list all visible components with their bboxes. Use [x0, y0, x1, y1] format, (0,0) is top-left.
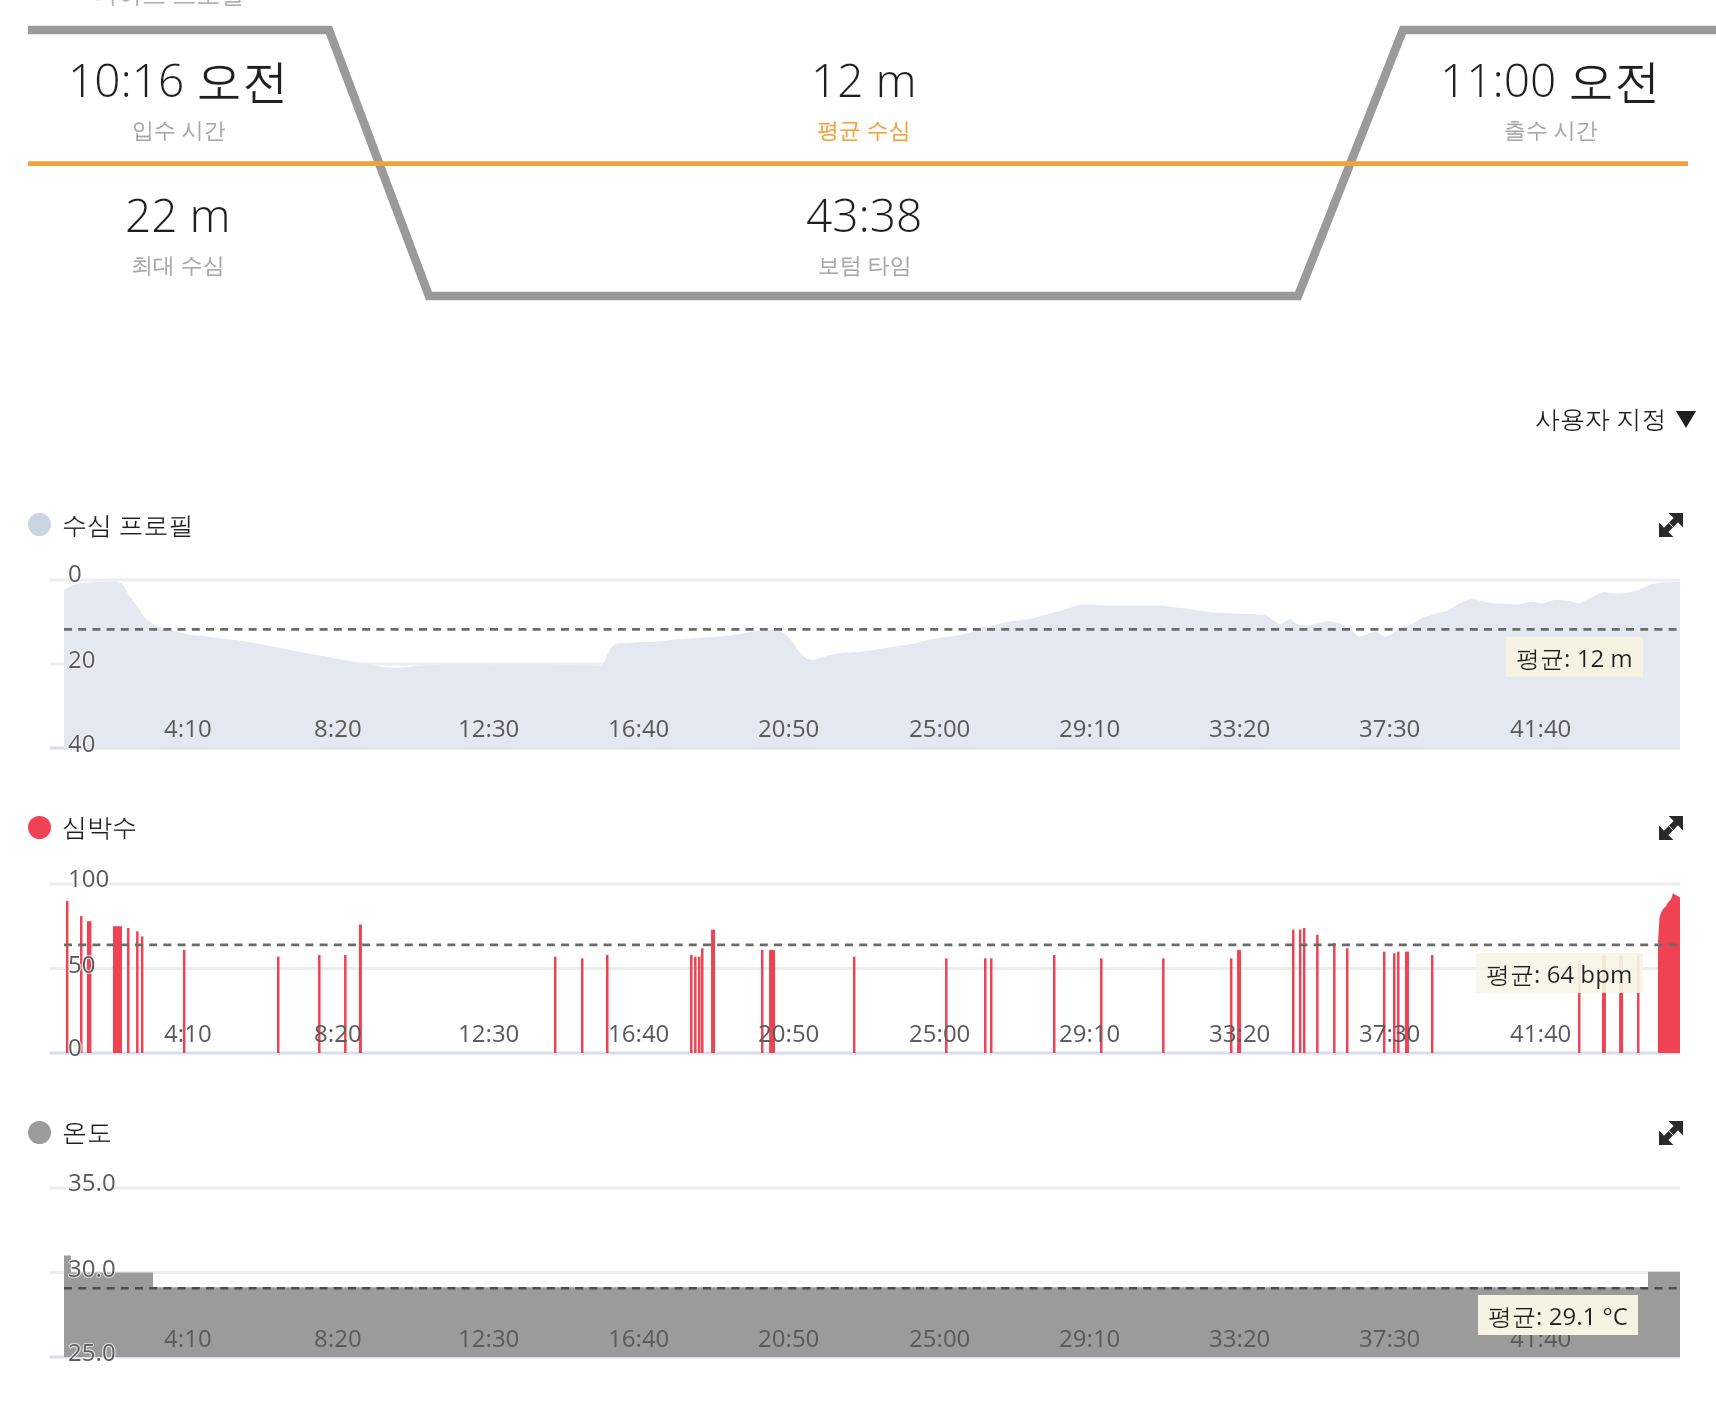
staticText: 4:10: [164, 1016, 212, 1049]
staticText: 30.0: [67, 1251, 115, 1284]
staticText: 0: [68, 556, 82, 589]
staticText: 30.0: [69, 1251, 117, 1284]
staticText: 12:30: [458, 1321, 520, 1354]
staticText: 50: [68, 948, 96, 981]
staticText: 29:10: [1059, 711, 1121, 744]
staticText: 11:00 오전: [1440, 48, 1661, 111]
staticText: 20: [67, 642, 95, 675]
staticText: 30.0: [68, 1251, 116, 1284]
button[interactable]: 심박수: [14, 797, 151, 857]
staticText: 40: [68, 726, 96, 759]
staticText: 25.0: [67, 1335, 115, 1368]
button[interactable]: Expand chart: [1643, 800, 1699, 856]
staticText: 25:00: [909, 1016, 971, 1049]
staticText: 평균 수심: [817, 114, 911, 144]
staticText: 16:40: [608, 1016, 670, 1049]
staticText: 평균: 64 bpm: [1486, 957, 1633, 990]
staticText: 100: [67, 861, 109, 894]
staticText: 40: [67, 726, 95, 759]
staticText: 20: [68, 643, 96, 676]
staticText: 입수 시간: [132, 114, 226, 144]
staticText: 35.0: [67, 1165, 115, 1198]
staticText: 35.0: [68, 1164, 116, 1197]
staticText: 평균: 29.1 °C: [1488, 1299, 1628, 1332]
staticText: 50: [68, 947, 96, 980]
staticText: 25.0: [69, 1335, 117, 1368]
staticText: 29:10: [1059, 1321, 1121, 1354]
staticText: 30.0: [68, 1252, 116, 1285]
staticText: 100: [68, 861, 110, 894]
staticText: 33:20: [1209, 1016, 1271, 1049]
button[interactable]: Expand chart: [1643, 1105, 1699, 1161]
staticText: 최대 수심: [131, 249, 225, 279]
staticText: 0: [69, 556, 83, 589]
staticText: 100: [68, 862, 110, 895]
staticText: 20:50: [758, 1321, 820, 1354]
staticText: 30.0: [68, 1250, 116, 1283]
staticText: 보텀 타임: [818, 249, 912, 279]
staticText: 20:50: [758, 711, 820, 744]
staticText: 25.0: [68, 1336, 116, 1369]
staticText: 50: [69, 947, 97, 980]
staticText: 37:30: [1359, 1321, 1421, 1354]
staticText: 12:30: [458, 711, 520, 744]
staticText: 4:10: [164, 711, 212, 744]
staticText: 12:30: [458, 1016, 520, 1049]
staticText: 43:38: [806, 183, 923, 246]
staticText: 8:20: [314, 1016, 362, 1049]
staticText: 41:40: [1510, 1321, 1572, 1354]
staticText: 20: [68, 642, 96, 675]
staticText: 0: [68, 557, 82, 590]
staticText: 35.0: [68, 1165, 116, 1198]
staticText: 0: [67, 1030, 81, 1063]
staticText: 0: [67, 556, 81, 589]
staticText: 100: [68, 860, 110, 893]
staticText: 40: [68, 727, 96, 760]
staticText: 수심 프로필: [62, 507, 194, 541]
staticText: 40: [68, 725, 96, 758]
staticText: 출수 시간: [1504, 114, 1598, 144]
staticText: 41:40: [1510, 711, 1572, 744]
staticText: 사용자 지정: [1535, 401, 1667, 435]
staticText: 50: [68, 946, 96, 979]
staticText: 20:50: [758, 1016, 820, 1049]
staticText: 29:10: [1059, 1016, 1121, 1049]
staticText: 8:20: [314, 1321, 362, 1354]
staticText: 4:10: [164, 1321, 212, 1354]
staticText: 0: [68, 1030, 82, 1063]
staticText: 37:30: [1359, 1016, 1421, 1049]
staticText: 37:30: [1359, 711, 1421, 744]
staticText: 8:20: [314, 711, 362, 744]
button[interactable]: 수심 프로필: [14, 494, 208, 554]
staticText: 0: [68, 1031, 82, 1064]
staticText: 25:00: [909, 1321, 971, 1354]
staticText: 다이브 프로필: [94, 0, 245, 10]
staticText: 33:20: [1209, 711, 1271, 744]
staticText: 0: [69, 1030, 83, 1063]
button[interactable]: Expand chart: [1643, 497, 1699, 553]
staticText: 35.0: [68, 1166, 116, 1199]
staticText: 16:40: [608, 1321, 670, 1354]
staticText: 35.0: [69, 1165, 117, 1198]
button[interactable]: 사용자 지정: [1521, 389, 1710, 447]
staticText: 25:00: [909, 711, 971, 744]
staticText: 25.0: [68, 1335, 116, 1368]
staticText: 12 m: [811, 48, 917, 111]
staticText: 40: [69, 726, 97, 759]
staticText: 0: [68, 1029, 82, 1062]
staticText: 20: [69, 642, 97, 675]
staticText: 16:40: [608, 711, 670, 744]
staticText: 22 m: [125, 183, 231, 246]
staticText: 평균: 12 m: [1516, 641, 1633, 674]
staticText: 20: [68, 641, 96, 674]
staticText: 33:20: [1209, 1321, 1271, 1354]
staticText: 100: [69, 861, 111, 894]
staticText: 10:16 오전: [68, 48, 289, 111]
staticText: 25.0: [68, 1334, 116, 1367]
staticText: 50: [67, 947, 95, 980]
staticText: 온도: [62, 1117, 112, 1148]
staticText: 0: [68, 555, 82, 588]
staticText: 심박수: [62, 812, 137, 843]
staticText: 41:40: [1510, 1016, 1572, 1049]
button[interactable]: 온도: [14, 1102, 126, 1162]
